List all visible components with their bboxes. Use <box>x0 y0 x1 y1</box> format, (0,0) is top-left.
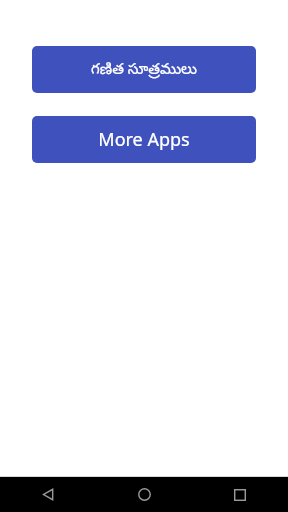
button[interactable]: Recent apps <box>192 477 288 512</box>
staticText: More Apps <box>98 127 190 152</box>
staticText: గణిత సూత్రములు <box>91 58 197 81</box>
button[interactable]: Back <box>0 477 96 512</box>
button[interactable]: గణిత సూత్రములు <box>32 46 256 93</box>
button[interactable]: Home <box>96 477 192 512</box>
button[interactable]: More Apps <box>32 116 256 163</box>
